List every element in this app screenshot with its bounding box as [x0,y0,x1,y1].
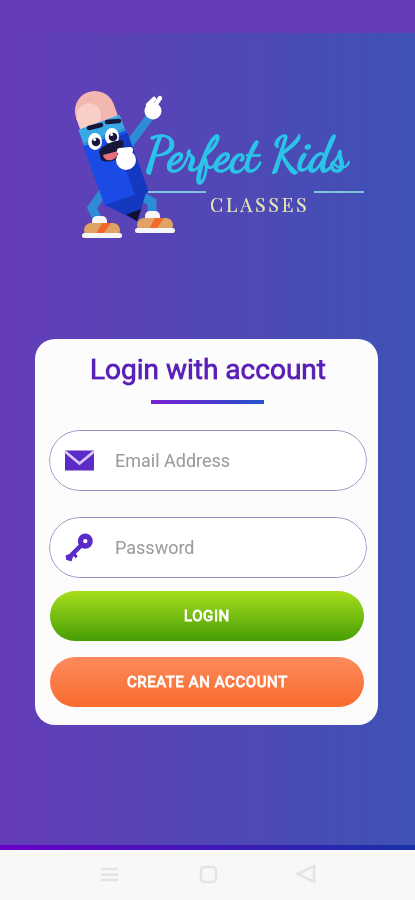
button[interactable]: CREATE AN ACCOUNT [50,657,364,707]
button[interactable]: Recent apps [85,850,133,898]
button[interactable]: Password [49,517,367,578]
staticText: CREATE AN ACCOUNT [127,673,288,691]
staticText: Perfect Kids [146,127,349,183]
staticText: CLASSES [210,191,310,216]
button[interactable]: Email Address [49,430,367,491]
button[interactable]: Back [282,850,330,898]
button[interactable]: Home [184,850,232,898]
staticText: Email Address [115,450,231,471]
button[interactable]: LOGIN [50,591,364,641]
staticText: LOGIN [184,607,230,625]
staticText: Password [115,537,195,558]
staticText: Login with account [90,353,326,386]
